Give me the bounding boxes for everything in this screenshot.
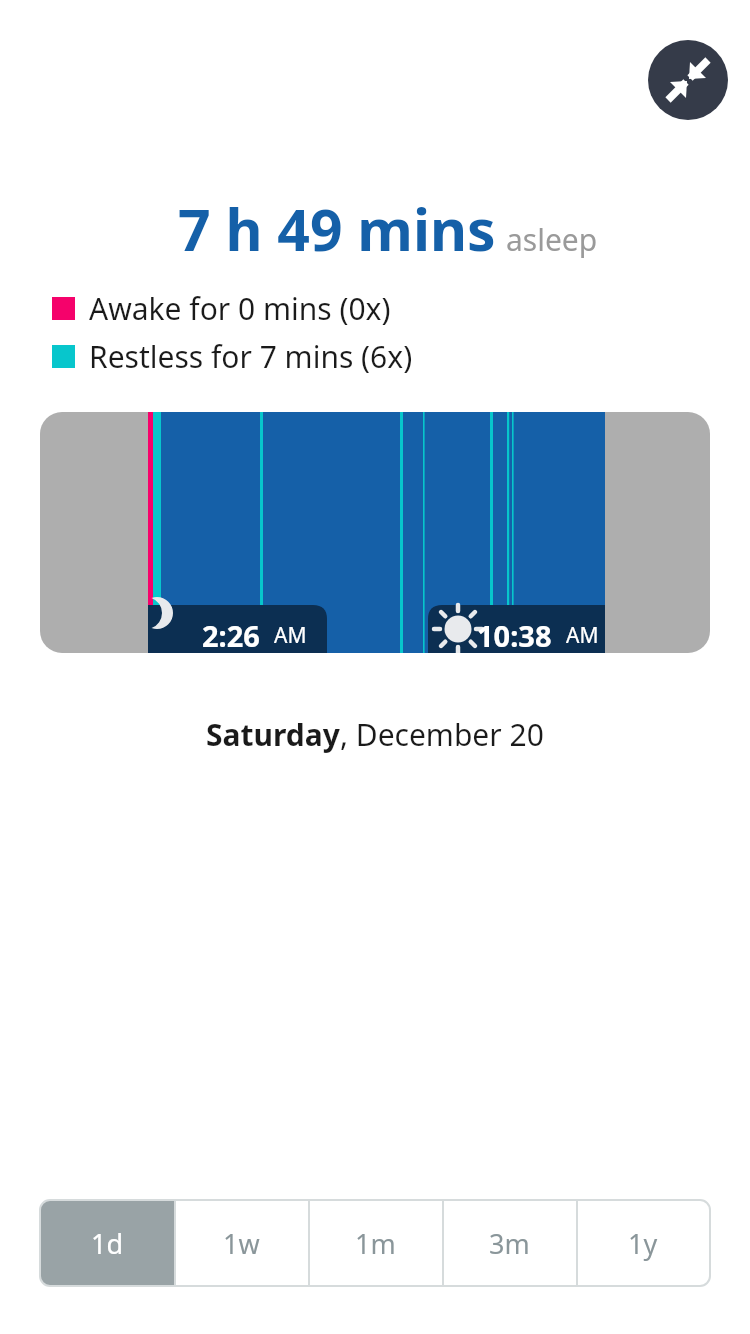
staticText: 1m <box>355 1225 396 1262</box>
staticText: Restless for 7 mins (6x) <box>89 336 413 376</box>
staticText: Awake for 0 mins (0x) <box>89 288 391 328</box>
staticText: 7 h 49 mins <box>178 190 496 268</box>
staticText: asleep <box>506 219 598 260</box>
button[interactable]: Restless for 7 mins (6x) <box>52 336 413 376</box>
button[interactable]: 1w <box>174 1200 308 1286</box>
button[interactable]: 3m <box>442 1200 576 1286</box>
button[interactable]: 1m <box>308 1200 442 1286</box>
button[interactable]: Awake for 0 mins (0x) <box>52 288 391 328</box>
staticText: 1w <box>223 1225 260 1262</box>
staticText: Saturday, December 20 <box>206 714 544 755</box>
button[interactable]: 2:26 <box>40 412 710 653</box>
staticText: 3m <box>489 1225 530 1262</box>
staticText: 10:38 <box>477 616 552 653</box>
staticText: AM <box>274 621 307 650</box>
staticText: AM <box>566 621 599 650</box>
staticText: 2:26 <box>202 616 260 653</box>
staticText: 1y <box>628 1225 658 1262</box>
staticText: 1d <box>91 1225 124 1262</box>
button[interactable]: 1y <box>576 1200 710 1286</box>
button[interactable]: Collapse <box>648 40 728 120</box>
button[interactable]: 1d <box>40 1200 174 1286</box>
